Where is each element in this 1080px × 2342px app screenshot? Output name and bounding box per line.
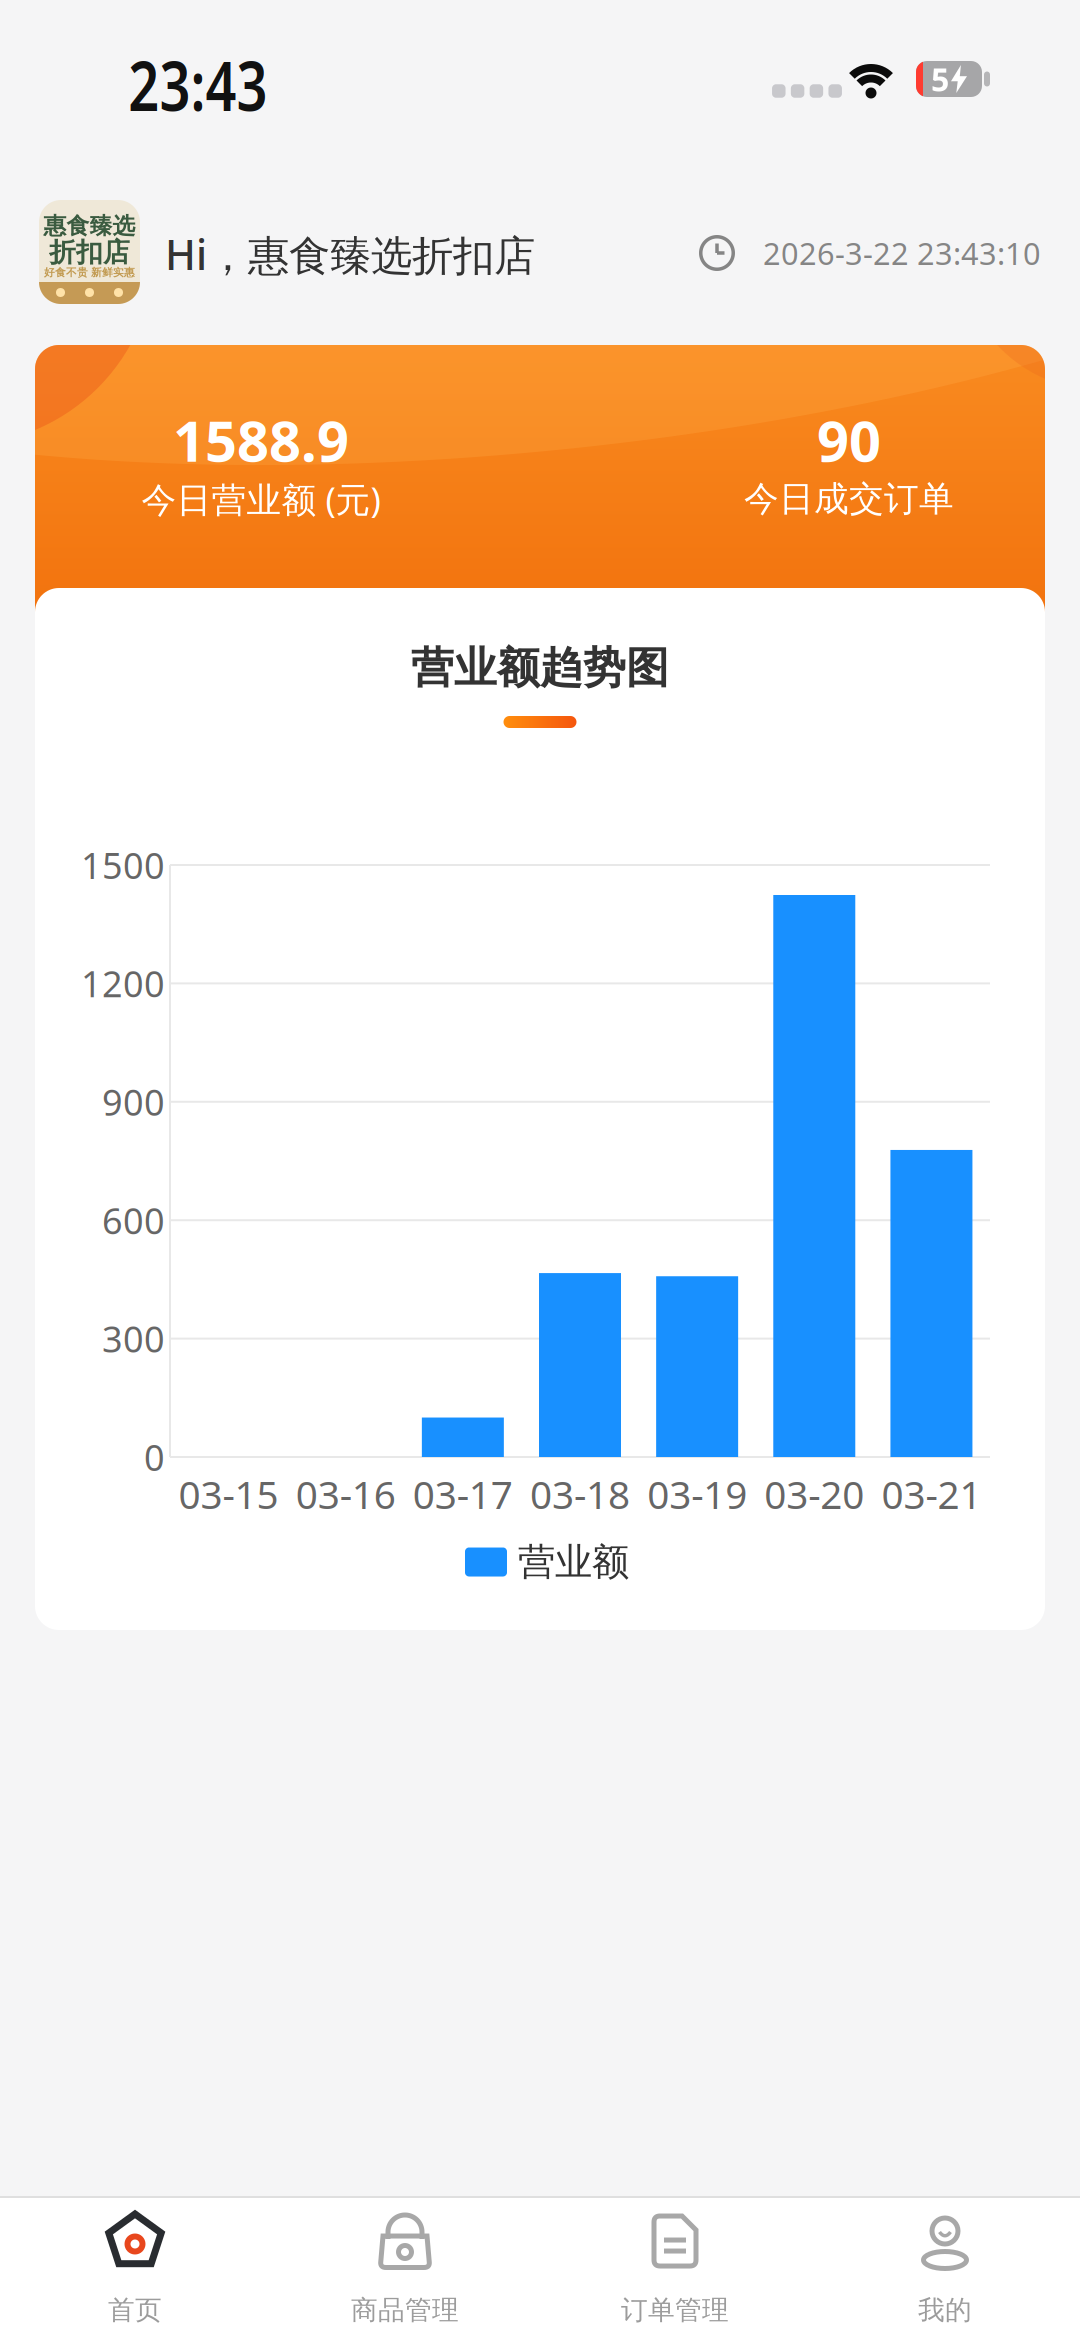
button[interactable]: 订单管理 <box>540 2198 810 2342</box>
staticText: 1200 <box>81 959 165 1007</box>
button[interactable]: 首页 <box>0 2198 270 2342</box>
staticText: 惠食臻选 <box>43 212 135 240</box>
staticText: 900 <box>102 1078 165 1126</box>
staticText: 折扣店 <box>49 236 130 269</box>
staticText: 我的 <box>918 2294 972 2326</box>
staticText: 23:43 <box>108 38 287 130</box>
button[interactable]: 商品管理 <box>270 2198 540 2342</box>
staticText: 1588.9 <box>173 403 349 477</box>
staticText: 营业额 <box>518 1539 629 1585</box>
staticText: 今日成交订单 <box>744 478 954 520</box>
staticText: 0 <box>144 1433 165 1481</box>
staticText: 03-17 <box>413 1468 513 1520</box>
staticText: 今日营业额 (元) <box>141 476 380 522</box>
staticText: 300 <box>102 1315 165 1362</box>
staticText: 5 <box>931 58 949 100</box>
staticText: 03-15 <box>179 1468 279 1520</box>
staticText: 03-16 <box>296 1468 396 1520</box>
staticText: 03-19 <box>647 1468 747 1520</box>
staticText: 商品管理 <box>351 2294 459 2326</box>
button[interactable]: 店铺头像 <box>39 200 140 304</box>
staticText: 首页 <box>108 2294 162 2326</box>
staticText: 03-20 <box>764 1468 864 1520</box>
staticText: Hi，惠食臻选折扣店 <box>165 226 535 281</box>
staticText: 2026-3-22 23:43:10 <box>763 233 1041 273</box>
button[interactable]: 我的 <box>810 2198 1080 2342</box>
staticText: 订单管理 <box>621 2294 729 2326</box>
staticText: 03-18 <box>530 1468 630 1520</box>
staticText: 好食不贵 新鲜实惠 <box>44 266 135 279</box>
staticText: 营业额趋势图 <box>411 642 669 694</box>
staticText: 1500 <box>81 841 165 889</box>
staticText: 03-21 <box>881 1468 981 1520</box>
staticText: 90 <box>817 403 881 477</box>
staticText: 600 <box>102 1196 165 1244</box>
